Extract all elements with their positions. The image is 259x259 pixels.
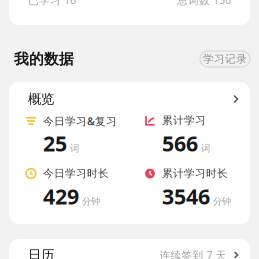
staticText: 总词数 156 bbox=[177, 0, 231, 7]
staticText: 连续签到 7 天 bbox=[160, 248, 227, 259]
staticText: 25 bbox=[43, 129, 67, 157]
staticText: 概览 bbox=[28, 91, 54, 107]
staticText: 分钟 bbox=[213, 196, 231, 207]
staticText: 已学习 16 bbox=[28, 0, 76, 7]
staticText: 累计学习时长 bbox=[162, 167, 228, 180]
staticText: 分钟 bbox=[82, 196, 100, 207]
staticText: 429 bbox=[43, 182, 79, 210]
staticText: 3546 bbox=[162, 182, 210, 210]
button[interactable]: 日历 bbox=[9, 239, 250, 259]
button[interactable]: 学习记录 bbox=[200, 51, 250, 67]
staticText: 今日学习&复习 bbox=[43, 114, 117, 128]
staticText: 566 bbox=[162, 129, 198, 157]
staticText: 学习记录 bbox=[203, 52, 247, 65]
staticText: 词 bbox=[201, 143, 210, 154]
staticText: 累计学习 bbox=[162, 114, 206, 127]
staticText: 词 bbox=[70, 143, 79, 154]
button[interactable]: 概览 bbox=[9, 84, 250, 114]
staticText: 我的数据 bbox=[14, 50, 74, 68]
staticText: 日历 bbox=[28, 247, 54, 259]
staticText: 今日学习时长 bbox=[43, 167, 109, 180]
